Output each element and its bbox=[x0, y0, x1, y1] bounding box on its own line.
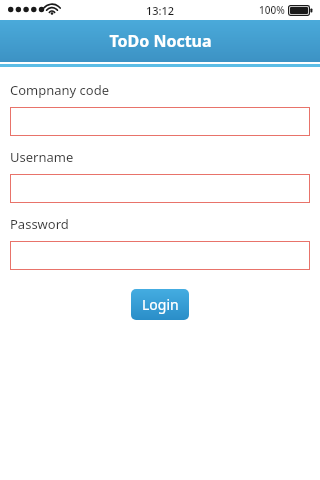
button[interactable]: Compnany code bbox=[10, 107, 310, 136]
staticText: 13:12 bbox=[146, 3, 175, 18]
button[interactable]: Username bbox=[10, 174, 310, 203]
staticText: ToDo Noctua bbox=[109, 30, 212, 52]
button[interactable]: Login bbox=[131, 289, 189, 320]
button[interactable]: Password bbox=[10, 241, 310, 270]
staticText: 100% bbox=[259, 3, 285, 17]
staticText: Compnany code bbox=[10, 81, 110, 99]
staticText: Login bbox=[142, 295, 179, 314]
staticText: Password bbox=[10, 215, 69, 233]
staticText: Username bbox=[10, 148, 74, 166]
